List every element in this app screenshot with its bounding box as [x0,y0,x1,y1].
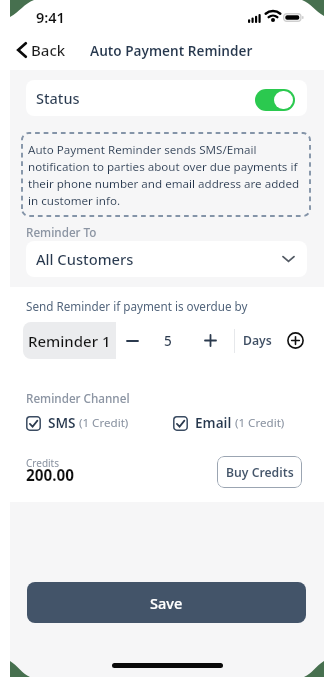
staticText: Reminder 1 [28,331,111,351]
button[interactable]: Increase [186,322,234,359]
staticText: 5 [164,332,172,350]
button[interactable]: Add reminder [287,332,304,349]
staticText: Days [243,332,272,349]
button[interactable]: All Customers [26,241,307,277]
staticText: Buy Credits [226,464,294,481]
button[interactable]: Reminder 1 [23,322,116,359]
button[interactable]: Email [173,413,285,432]
button[interactable]: Back [10,36,74,64]
staticText: Credits [26,456,60,470]
staticText: Reminder To [26,224,97,240]
staticText: Back [31,40,66,60]
button[interactable]: Save [27,582,306,623]
staticText: Save [150,593,183,613]
staticText: All Customers [36,249,134,269]
staticText: Email [195,413,232,432]
staticText: (1 Credit) [235,415,285,431]
staticText: 9:41 [36,7,65,27]
button[interactable]: Buy Credits [217,456,302,488]
staticText: SMS [48,413,76,432]
staticText: Auto Payment Reminder sends SMS/Email no… [28,142,304,209]
staticText: 200.00 [26,465,75,486]
staticText: Reminder Channel [26,390,130,406]
staticText: Status [36,88,80,108]
button[interactable]: SMS [26,413,129,432]
staticText: (1 Credit) [79,415,129,431]
staticText: Auto Payment Reminder [90,41,253,60]
staticText: Send Reminder if payment is overdue by [26,298,248,314]
button[interactable]: Status [26,80,307,116]
button[interactable]: Decrease [116,322,149,359]
